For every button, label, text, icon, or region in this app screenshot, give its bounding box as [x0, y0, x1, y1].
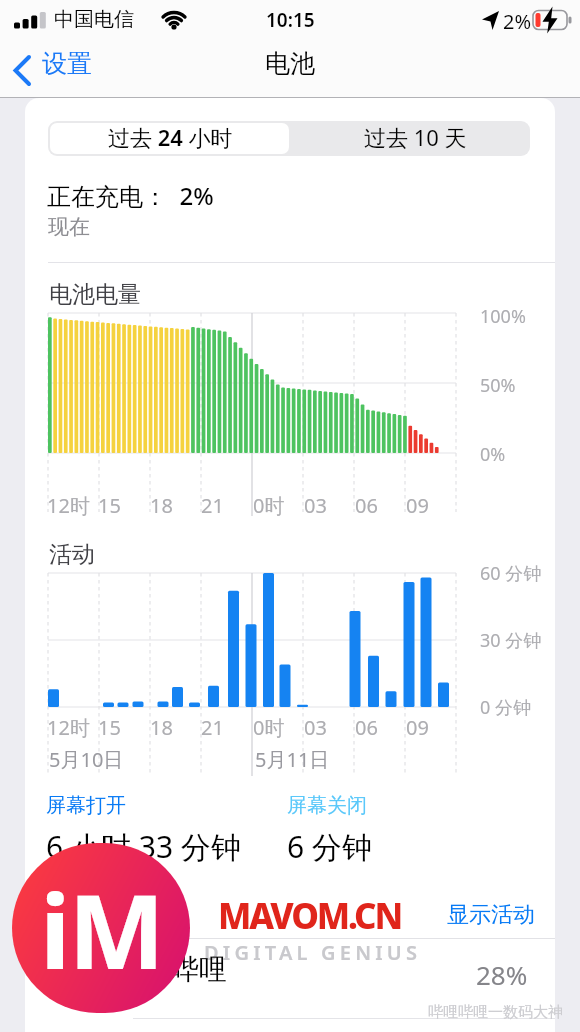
staticText: 电池 [265, 48, 315, 79]
staticText: 6 小时 33 分钟 [46, 826, 241, 867]
staticText: 0时 [253, 492, 285, 519]
staticText: 60 分钟 [480, 561, 542, 586]
staticText: 哔哩 [171, 952, 227, 987]
staticText: 0 分钟 [480, 695, 531, 720]
staticText: 中国电信 [54, 7, 134, 32]
staticText: 03 [304, 714, 327, 741]
staticText: 21 [201, 492, 224, 519]
staticText: 显示活动 [447, 901, 535, 929]
staticText: 正在充电： 2% [47, 179, 214, 212]
staticText: 06 [355, 714, 378, 741]
staticText: 18 [150, 492, 173, 519]
staticText: 0% [480, 442, 506, 467]
staticText: 03 [304, 492, 327, 519]
staticText: 12时 [47, 492, 90, 519]
staticText: 过去 10 天 [364, 122, 467, 152]
staticText: 100% [480, 304, 526, 329]
staticText: 12时 [47, 714, 90, 741]
staticText: 设置 [42, 48, 92, 79]
button[interactable]: 过去 10 天 [300, 119, 530, 154]
staticText: MAVOM.CN [218, 892, 402, 940]
staticText: 15 [98, 492, 121, 519]
staticText: 现在 [48, 214, 90, 240]
staticText: 21 [201, 714, 224, 741]
staticText: 屏幕打开 [46, 793, 126, 818]
staticText: 5月11日 [255, 746, 330, 773]
staticText: 09 [406, 714, 429, 741]
staticText: 哔哩哔哩一数码大神 [428, 1003, 563, 1022]
staticText: 30 分钟 [480, 628, 542, 653]
staticText: 09 [406, 492, 429, 519]
staticText: 6 分钟 [287, 826, 372, 867]
button[interactable]: 显示活动 [442, 898, 547, 932]
staticText: 50% [480, 373, 516, 398]
button[interactable]: 过去 24 小时 [51, 119, 289, 154]
staticText: 15 [98, 714, 121, 741]
staticText: 28% [476, 957, 528, 992]
staticText: 2% [503, 8, 532, 35]
staticText: 活动 [49, 540, 95, 569]
staticText: 18 [150, 714, 173, 741]
staticText: 屏幕关闭 [287, 793, 367, 818]
staticText: 过去 24 小时 [108, 122, 233, 152]
staticText: 10:15 [266, 7, 315, 33]
staticText: DIGITAL GENIUS [204, 939, 422, 966]
staticText: 电池电量 [49, 280, 141, 309]
staticText: 5月10日 [49, 746, 124, 773]
staticText: iM [40, 860, 163, 999]
button[interactable] [100, 950, 540, 1010]
button[interactable] [10, 50, 120, 92]
staticText: 0时 [253, 714, 285, 741]
staticText: 06 [355, 492, 378, 519]
